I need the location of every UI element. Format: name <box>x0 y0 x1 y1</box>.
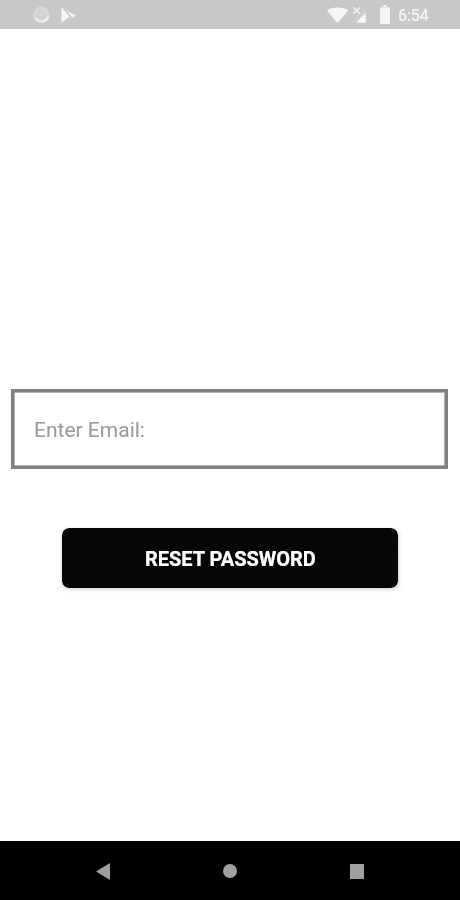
staticText: RESET PASSWORD <box>145 547 316 570</box>
staticText: Enter Email: <box>34 418 145 443</box>
button[interactable]: Enter Email: <box>11 389 448 469</box>
button[interactable]: Home <box>207 848 253 894</box>
staticText: 6:54 <box>398 6 429 25</box>
button[interactable]: Recent apps <box>334 848 380 894</box>
button[interactable]: RESET PASSWORD <box>62 528 398 588</box>
button[interactable]: Back <box>80 848 126 894</box>
